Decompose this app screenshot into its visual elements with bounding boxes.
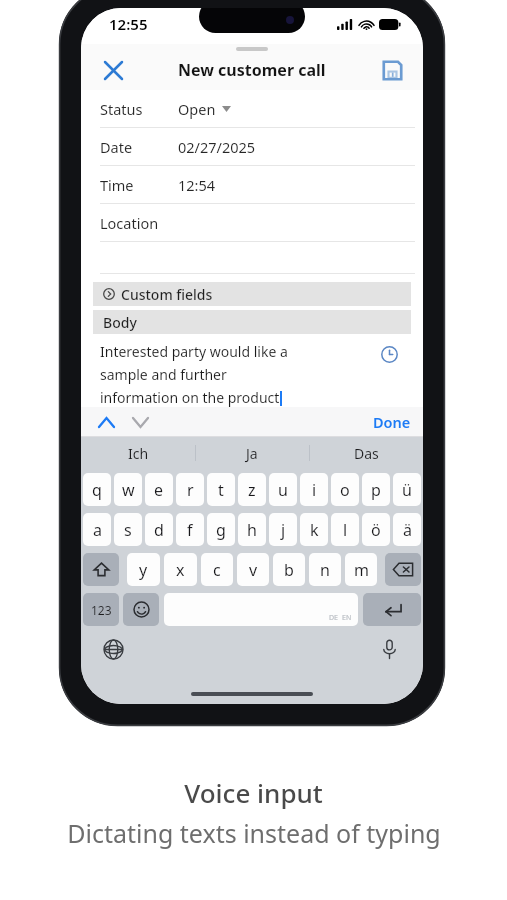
staticText: Done xyxy=(373,412,411,432)
staticText: e xyxy=(154,479,164,501)
button[interactable]: Ja xyxy=(195,437,309,469)
staticText: information on the product xyxy=(100,388,280,407)
staticText: t xyxy=(218,479,224,501)
button[interactable]: k xyxy=(300,513,328,546)
button[interactable]: c xyxy=(201,553,233,586)
staticText: EN xyxy=(342,613,352,623)
staticText: Dictating texts instead of typing xyxy=(67,816,441,850)
staticText: y xyxy=(139,559,148,581)
staticText: c xyxy=(213,559,221,581)
button[interactable]: Timestamp xyxy=(377,342,401,366)
button[interactable]: y xyxy=(127,553,160,586)
button[interactable]: l xyxy=(331,513,359,546)
button[interactable]: Save xyxy=(375,53,409,87)
staticText: Open xyxy=(178,99,216,119)
button[interactable]: i xyxy=(300,473,328,506)
button[interactable]: Change keyboard language xyxy=(99,635,127,663)
button[interactable]: Custom fields xyxy=(93,282,411,306)
button[interactable]: Das xyxy=(309,437,423,469)
staticText: sample and further xyxy=(100,365,227,384)
staticText: o xyxy=(340,479,350,501)
staticText: ä xyxy=(403,519,412,541)
button[interactable]: ä xyxy=(393,513,421,546)
button[interactable]: x xyxy=(164,553,197,586)
button[interactable]: b xyxy=(273,553,305,586)
button[interactable]: Date xyxy=(81,128,423,166)
staticText: Interested party would like a xyxy=(100,342,288,361)
button[interactable]: Emoji xyxy=(123,593,159,626)
button[interactable]: Status xyxy=(81,90,423,128)
staticText: Das xyxy=(354,444,379,463)
staticText: h xyxy=(247,519,257,541)
staticText: m xyxy=(354,559,369,581)
staticText: Body xyxy=(103,313,137,332)
button[interactable]: u xyxy=(269,473,297,506)
button[interactable]: h xyxy=(238,513,266,546)
staticText: a xyxy=(93,519,102,541)
staticText: Voice input xyxy=(184,775,323,810)
staticText: 02/27/2025 xyxy=(178,137,256,157)
button[interactable]: g xyxy=(207,513,235,546)
staticText: k xyxy=(310,519,319,541)
staticText: x xyxy=(176,559,185,581)
staticText: New customer call xyxy=(178,59,326,81)
button[interactable]: Numbers xyxy=(83,593,119,626)
staticText: r xyxy=(187,479,194,501)
staticText: u xyxy=(278,479,288,501)
staticText: z xyxy=(248,479,256,501)
button[interactable]: a xyxy=(83,513,111,546)
staticText: ü xyxy=(402,479,412,501)
staticText: b xyxy=(284,559,294,581)
staticText: Time xyxy=(100,175,178,195)
button[interactable]: w xyxy=(114,473,142,506)
button[interactable]: z xyxy=(238,473,266,506)
staticText: p xyxy=(371,479,381,501)
staticText: f xyxy=(187,519,193,541)
staticText: s xyxy=(124,519,132,541)
staticText: 12:54 xyxy=(178,175,216,195)
button[interactable]: j xyxy=(269,513,297,546)
staticText: Ja xyxy=(246,444,258,463)
button[interactable]: Previous field xyxy=(93,409,119,435)
button[interactable]: Ich xyxy=(81,437,195,469)
button[interactable]: Close xyxy=(95,52,131,88)
staticText: Custom fields xyxy=(121,285,213,304)
button[interactable]: Backspace xyxy=(385,553,421,586)
button[interactable]: e xyxy=(145,473,173,506)
button[interactable]: t xyxy=(207,473,235,506)
staticText: v xyxy=(249,559,258,581)
button[interactable]: f xyxy=(176,513,204,546)
button[interactable]: n xyxy=(309,553,341,586)
button[interactable]: Location xyxy=(81,204,423,242)
staticText: Location xyxy=(100,213,178,233)
button[interactable]: Time xyxy=(81,166,423,204)
button[interactable]: v xyxy=(237,553,269,586)
staticText: i xyxy=(312,479,317,501)
staticText: Date xyxy=(100,137,178,157)
staticText: Status xyxy=(100,99,178,119)
staticText: Ich xyxy=(128,444,149,463)
button[interactable]: p xyxy=(362,473,390,506)
button[interactable]: Shift xyxy=(83,553,119,586)
staticText: j xyxy=(281,519,286,541)
button[interactable]: Body xyxy=(93,310,411,334)
button[interactable]: Next field xyxy=(127,409,153,435)
staticText: 12:55 xyxy=(109,14,148,34)
button[interactable]: Space xyxy=(164,593,358,626)
button[interactable]: m xyxy=(345,553,377,586)
button[interactable]: Dictate xyxy=(375,635,403,663)
staticText: d xyxy=(154,519,164,541)
button[interactable]: o xyxy=(331,473,359,506)
button[interactable]: ö xyxy=(362,513,390,546)
button[interactable]: r xyxy=(176,473,204,506)
staticText: g xyxy=(216,519,226,541)
button[interactable]: Done xyxy=(373,412,411,432)
button[interactable]: s xyxy=(114,513,142,546)
staticText: ö xyxy=(371,519,381,541)
button[interactable]: ü xyxy=(393,473,421,506)
button[interactable]: Return xyxy=(363,593,421,626)
button[interactable]: q xyxy=(83,473,111,506)
staticText: n xyxy=(320,559,330,581)
staticText: q xyxy=(92,479,102,501)
button[interactable]: d xyxy=(145,513,173,546)
